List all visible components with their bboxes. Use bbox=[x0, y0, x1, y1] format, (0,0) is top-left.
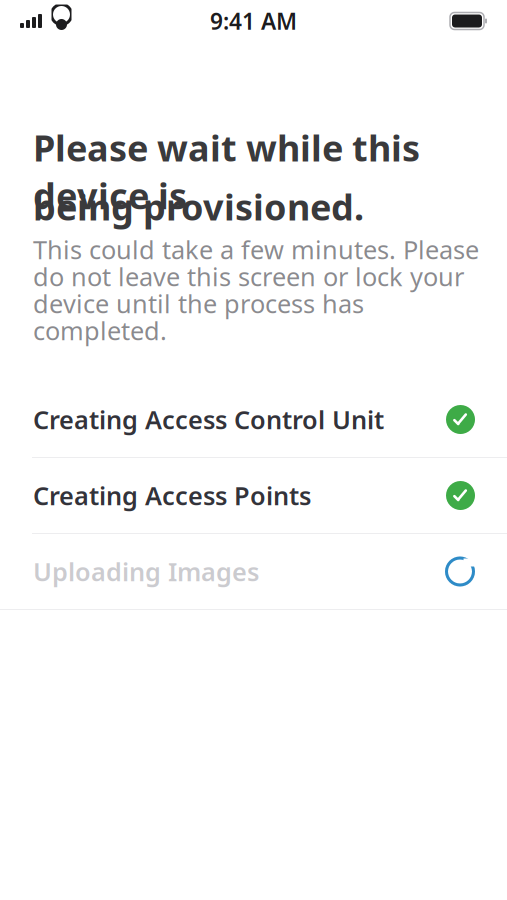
staticText: Please wait while this device is bbox=[33, 124, 420, 219]
button[interactable]: Creating Access Points bbox=[0, 458, 507, 533]
staticText: Creating Access Points bbox=[33, 479, 311, 512]
staticText: completed. bbox=[33, 314, 167, 347]
staticText: 9:41 AM bbox=[210, 6, 297, 36]
button[interactable]: Uploading Images bbox=[0, 534, 507, 609]
staticText: This could take a few minutes. Please bbox=[33, 233, 479, 266]
button[interactable]: Creating Access Control Unit bbox=[0, 382, 507, 457]
staticText: Creating Access Control Unit bbox=[33, 403, 384, 436]
staticText: Uploading Images bbox=[33, 555, 259, 588]
staticText: device until the process has bbox=[33, 287, 364, 320]
staticText: being provisioned. bbox=[33, 183, 364, 230]
staticText: do not leave this screen or lock your bbox=[33, 260, 464, 293]
